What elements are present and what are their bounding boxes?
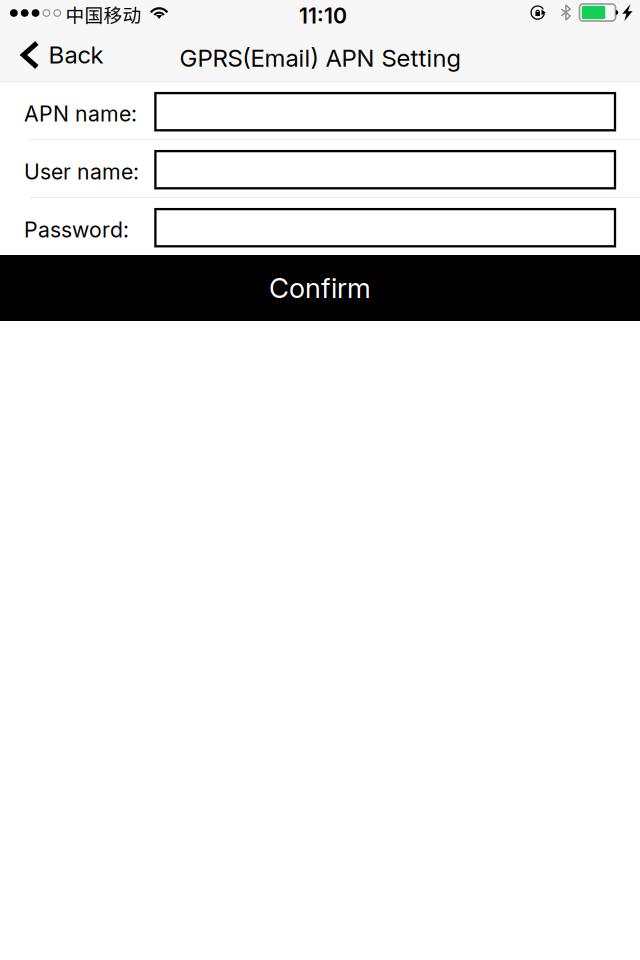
staticText: GPRS(Email) APN Setting — [179, 43, 460, 72]
button[interactable]: User name: — [154, 150, 616, 189]
staticText: 11:10 — [299, 3, 347, 29]
button[interactable]: Confirm — [0, 255, 640, 321]
staticText: User name: — [24, 159, 139, 185]
button[interactable]: APN name: — [154, 92, 616, 131]
button[interactable]: Password: — [154, 208, 616, 247]
button[interactable]: Back — [0, 34, 110, 82]
staticText: Back — [49, 40, 104, 69]
staticText: 中国移动 — [65, 0, 141, 27]
staticText: Password: — [24, 217, 129, 243]
staticText: APN name: — [24, 101, 137, 127]
staticText: Confirm — [269, 271, 371, 305]
